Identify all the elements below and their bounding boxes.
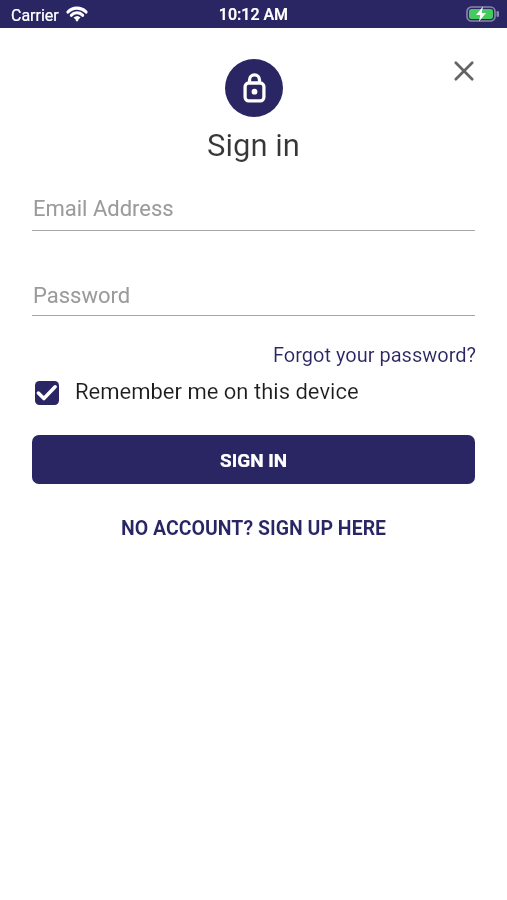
button[interactable]: Forgot your password? — [273, 343, 476, 366]
button[interactable] — [445, 52, 483, 90]
button[interactable]: SIGN IN — [32, 435, 475, 484]
button[interactable]: Password — [32, 277, 475, 316]
button[interactable]: NO ACCOUNT? SIGN UP HERE — [121, 517, 387, 540]
staticText: Password — [33, 283, 131, 309]
staticText: Sign in — [0, 127, 507, 163]
staticText: SIGN IN — [220, 449, 288, 471]
staticText: 10:12 AM — [0, 5, 507, 24]
button[interactable]: Email Address — [32, 192, 475, 231]
staticText: Carrier — [11, 6, 59, 25]
staticText: Remember me on this device — [75, 379, 359, 405]
button[interactable]: Remember me on this device — [32, 376, 392, 410]
staticText: Email Address — [33, 196, 174, 222]
